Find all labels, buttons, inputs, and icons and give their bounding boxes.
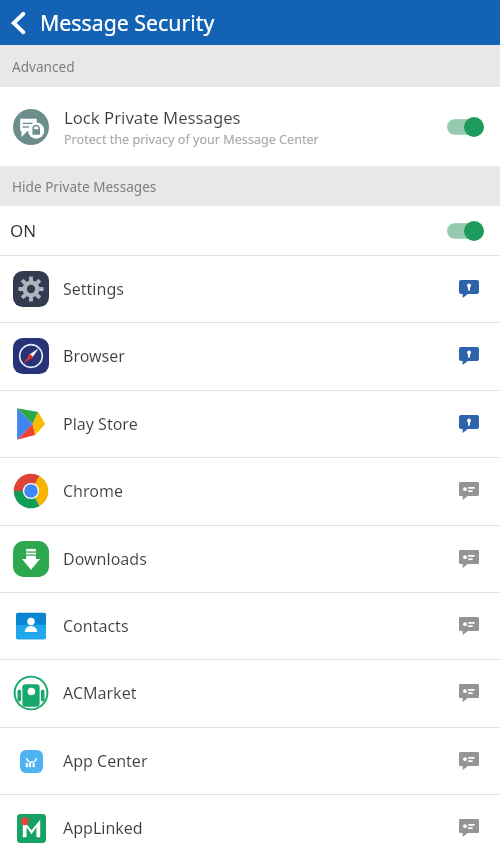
staticText: Hide Private Messages — [12, 177, 157, 196]
staticText: Settings — [63, 278, 459, 300]
button[interactable]: Browser — [0, 322, 500, 390]
button[interactable]: Back — [0, 4, 38, 42]
button[interactable]: Settings — [0, 255, 500, 322]
staticText: AppLinked — [63, 817, 459, 839]
staticText: Contacts — [63, 615, 459, 637]
button[interactable]: App Center — [0, 727, 500, 794]
staticText: Advanced — [12, 57, 75, 76]
button[interactable]: ACMarket — [0, 659, 500, 727]
button[interactable]: Chrome — [0, 457, 500, 525]
staticText: Play Store — [63, 413, 459, 435]
staticText: ON — [10, 219, 447, 242]
button[interactable]: Downloads — [0, 525, 500, 592]
staticText: Browser — [63, 345, 459, 367]
button[interactable]: AppLinked — [0, 794, 500, 862]
staticText: Lock Private Messages — [64, 106, 241, 129]
button[interactable]: ON — [0, 206, 500, 255]
staticText: ACMarket — [63, 682, 459, 704]
button[interactable]: Lock Private Messages — [0, 87, 500, 166]
staticText: Downloads — [63, 548, 459, 570]
button[interactable]: Contacts — [0, 592, 500, 659]
button[interactable]: Play Store — [0, 390, 500, 457]
staticText: Protect the privacy of your Message Cent… — [64, 131, 319, 148]
staticText: Chrome — [63, 480, 459, 502]
staticText: App Center — [63, 750, 459, 772]
staticText: Message Security — [40, 8, 215, 37]
